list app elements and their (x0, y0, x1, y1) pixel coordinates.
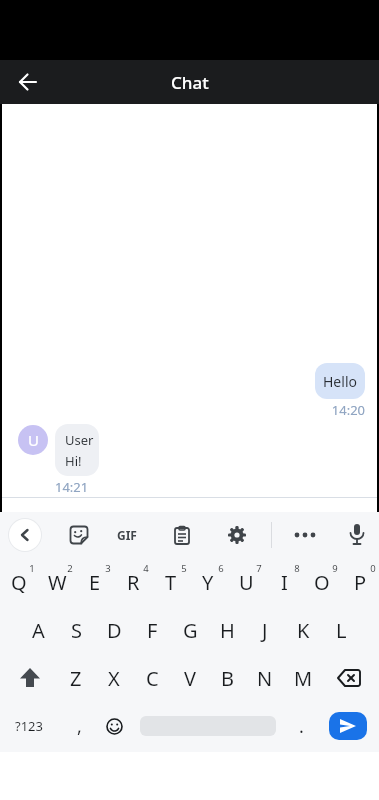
staticText: B (221, 665, 234, 692)
staticText: Q (11, 569, 27, 596)
staticText: 3 (28, 562, 188, 575)
staticText: U (239, 569, 254, 596)
staticText: T (165, 569, 177, 596)
staticText: 0 (293, 562, 379, 575)
button[interactable]: J (246, 607, 284, 653)
staticText: P (354, 569, 367, 596)
staticText: , (77, 714, 82, 739)
button[interactable]: Q (0, 559, 38, 605)
staticText: F (147, 617, 158, 644)
button[interactable]: ?123 (4, 704, 54, 748)
staticText: 6 (141, 562, 301, 575)
button[interactable] (325, 656, 373, 700)
button[interactable]: , (60, 704, 98, 748)
button[interactable]: A (19, 607, 57, 653)
staticText: K (297, 617, 310, 644)
staticText: 8 (217, 562, 377, 575)
staticText: 1 (0, 562, 112, 575)
button[interactable]: U (227, 559, 265, 605)
button[interactable]: R (114, 559, 152, 605)
button[interactable]: I (265, 559, 303, 605)
button[interactable]: User (55, 424, 99, 476)
staticText: H (220, 617, 235, 644)
staticText: U (28, 430, 39, 450)
button[interactable]: P (341, 559, 379, 605)
button[interactable] (168, 521, 196, 549)
button[interactable]: B (208, 655, 246, 701)
button[interactable]: F (133, 607, 171, 653)
staticText: X (108, 665, 120, 692)
staticText: J (262, 617, 268, 644)
staticText: R (127, 569, 140, 596)
staticText: Hello (323, 372, 357, 391)
staticText: . (299, 714, 304, 739)
button[interactable]: X (95, 655, 133, 701)
staticText: Z (70, 665, 82, 692)
staticText: C (146, 665, 159, 692)
button[interactable]: GIF (109, 521, 145, 549)
button[interactable] (65, 521, 93, 549)
staticText: E (89, 569, 101, 596)
button[interactable]: K (284, 607, 322, 653)
staticText: O (314, 569, 330, 596)
button[interactable] (343, 521, 371, 549)
button[interactable]: G (171, 607, 209, 653)
staticText: 5 (104, 562, 264, 575)
staticText: L (336, 617, 347, 644)
button[interactable]: T (152, 559, 190, 605)
button[interactable]: L (322, 607, 360, 653)
staticText: G (183, 617, 198, 644)
staticText: V (184, 665, 196, 692)
staticText: A (32, 617, 45, 644)
button[interactable] (223, 521, 251, 549)
staticText: 14:20 (205, 401, 365, 419)
button[interactable]: N (246, 655, 284, 701)
button[interactable]: W (38, 559, 76, 605)
button[interactable] (291, 521, 319, 549)
staticText: D (107, 617, 122, 644)
staticText: M (294, 665, 313, 692)
button[interactable]: C (133, 655, 171, 701)
staticText: Y (202, 569, 214, 596)
staticText: I (281, 569, 288, 596)
staticText: Hi! (65, 452, 82, 470)
button[interactable]: V (171, 655, 209, 701)
staticText: S (71, 617, 82, 644)
staticText: W (48, 569, 67, 596)
button[interactable]: D (95, 607, 133, 653)
button[interactable] (329, 712, 367, 740)
button[interactable] (12, 66, 44, 98)
staticText: N (257, 665, 273, 692)
button[interactable] (9, 519, 41, 551)
button[interactable]: O (303, 559, 341, 605)
staticText: 14:21 (55, 478, 89, 496)
staticText: 7 (179, 562, 339, 575)
button[interactable]: Z (57, 655, 95, 701)
staticText: GIF (117, 527, 137, 543)
button[interactable]: S (57, 607, 95, 653)
staticText: Chat (171, 71, 209, 94)
button[interactable]: E (76, 559, 114, 605)
button[interactable]: M (284, 655, 322, 701)
button[interactable]: Y (189, 559, 227, 605)
button[interactable] (95, 704, 133, 748)
button[interactable] (6, 656, 54, 700)
button[interactable]: Hello (315, 363, 365, 399)
staticText: 4 (66, 562, 226, 575)
staticText: 9 (255, 562, 379, 575)
staticText: ?123 (15, 717, 43, 735)
button[interactable]: . (282, 704, 320, 748)
staticText: 2 (0, 562, 150, 575)
staticText: User (65, 431, 94, 449)
button[interactable]: H (208, 607, 246, 653)
